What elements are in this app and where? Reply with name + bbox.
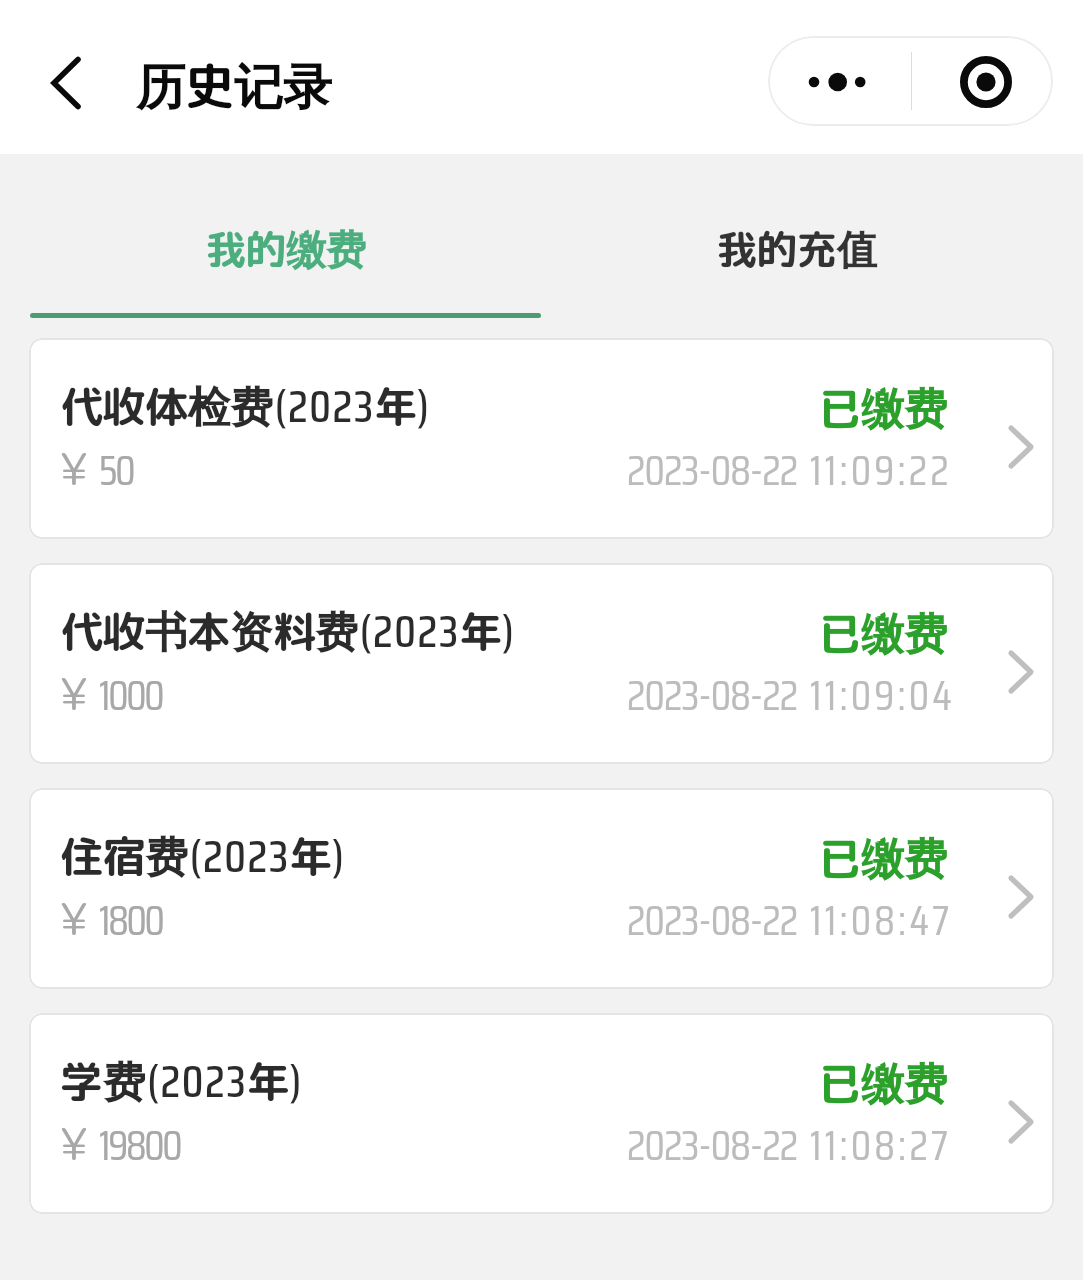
button[interactable]: 学费 (2023年) — [29, 1013, 1054, 1214]
staticText: 2023-08-22 — [627, 437, 798, 503]
staticText: 11:09:22 — [810, 437, 952, 503]
staticText: 我的充值 — [717, 221, 877, 277]
button[interactable]: 我的缴费 — [30, 188, 541, 309]
button[interactable]: Close — [912, 36, 1053, 126]
staticText: 住宿费 (2023年) — [60, 821, 346, 892]
staticText: 11:08:27 — [810, 1112, 952, 1178]
staticText: 2023-08-22 — [627, 887, 798, 953]
staticText: 2023-08-22 — [627, 662, 798, 728]
staticText: ¥ — [60, 438, 88, 499]
button[interactable]: Back — [25, 40, 105, 124]
button[interactable]: 代收书本资料费 (2023年) — [29, 563, 1054, 764]
button[interactable]: 代收体检费 (2023年) — [29, 338, 1054, 539]
staticText: 2023-08-22 — [627, 1112, 798, 1178]
staticText: 学费 (2023年) — [60, 1046, 303, 1117]
staticText: 19800 — [99, 1112, 181, 1178]
button[interactable]: More — [768, 36, 911, 126]
staticText: 已缴费 — [818, 828, 947, 888]
staticText: 代收体检费 (2023年) — [60, 371, 431, 442]
staticText: ¥ — [60, 1113, 88, 1174]
staticText: 已缴费 — [818, 603, 947, 663]
staticText: 50 — [99, 437, 134, 503]
staticText: 历史记录 — [136, 51, 333, 119]
staticText: 1000 — [99, 662, 163, 728]
button[interactable]: 我的充值 — [541, 188, 1053, 309]
staticText: 代收书本资料费 (2023年) — [60, 596, 516, 667]
button[interactable]: 住宿费 (2023年) — [29, 788, 1054, 989]
staticText: 11:08:47 — [810, 887, 953, 953]
staticText: 11:09:04 — [810, 662, 956, 728]
staticText: ¥ — [60, 888, 88, 949]
staticText: 我的缴费 — [206, 221, 366, 277]
staticText: 1800 — [99, 887, 163, 953]
staticText: ¥ — [60, 663, 88, 724]
staticText: 已缴费 — [818, 378, 947, 438]
staticText: 已缴费 — [818, 1053, 947, 1113]
